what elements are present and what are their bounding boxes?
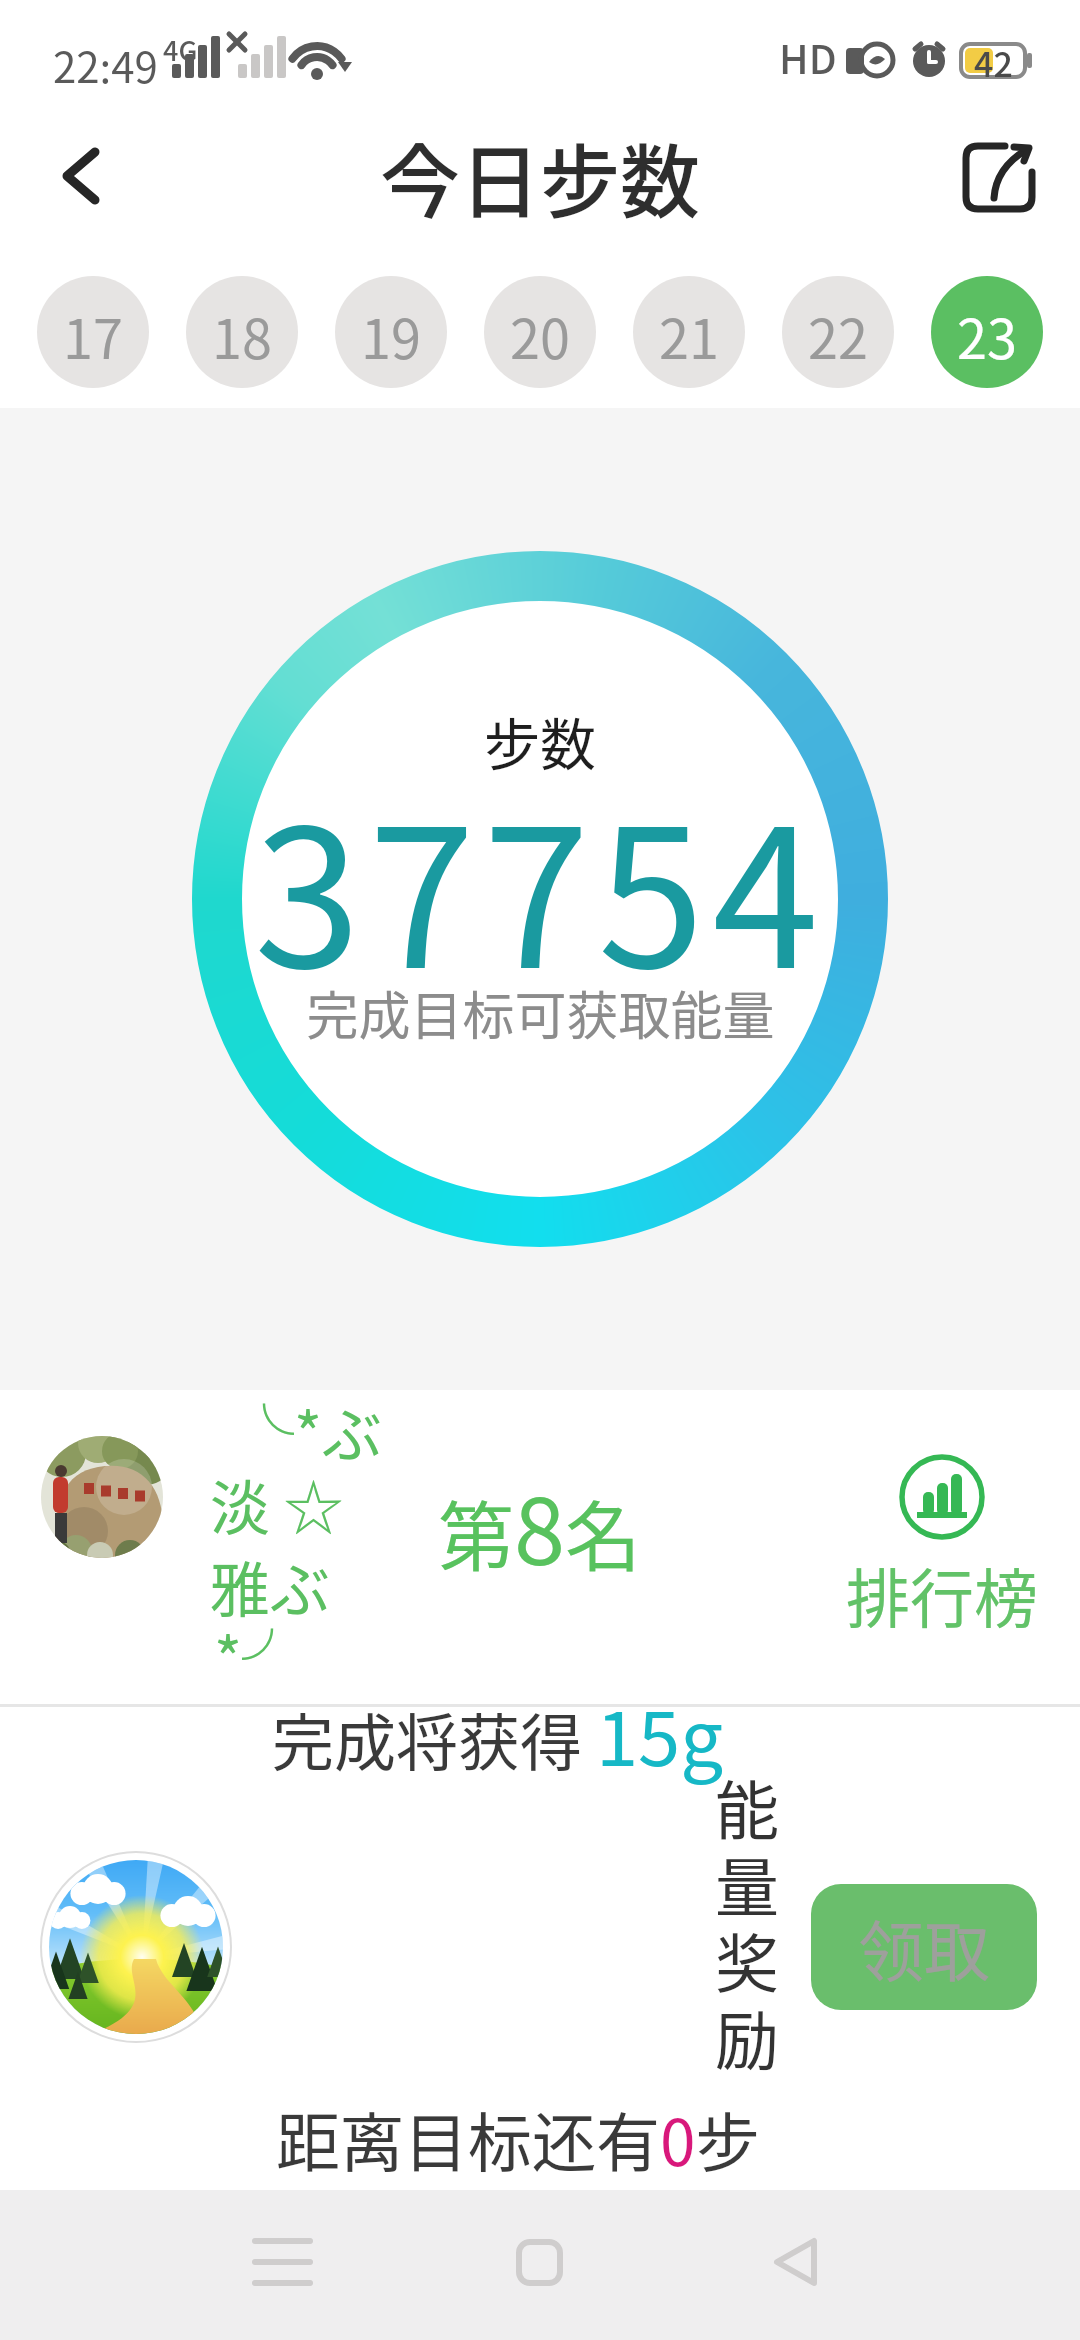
- staticText: 20: [510, 296, 570, 368]
- staticText: 18: [212, 296, 272, 368]
- staticText: HD: [779, 28, 837, 86]
- staticText: 距离目标还有0步: [276, 2092, 760, 2185]
- staticText: 能: [715, 1760, 779, 1853]
- staticText: 22: [808, 296, 868, 368]
- staticText: 42: [974, 38, 1013, 87]
- staticText: ╰*ぶ: [234, 1387, 383, 1474]
- staticText: 17: [63, 296, 123, 368]
- staticText: 23: [957, 296, 1017, 368]
- staticText: 37754: [254, 745, 827, 1023]
- staticText: 领取: [858, 1899, 990, 1995]
- staticText: 今日步数: [380, 118, 700, 234]
- staticText: 4G: [163, 30, 198, 69]
- staticText: 步数: [484, 700, 596, 781]
- staticText: *╯: [214, 1612, 303, 1699]
- staticText: 淡 ☆: [210, 1460, 344, 1547]
- staticText: 第8名: [438, 1458, 642, 1591]
- staticText: 完成将获得 15g: [272, 1678, 724, 1788]
- staticText: 完成目标可获取能量: [306, 975, 775, 1050]
- staticText: 19: [361, 296, 421, 368]
- staticText: 量: [715, 1837, 779, 1930]
- staticText: 排行榜: [846, 1548, 1038, 1641]
- staticText: 22:49: [53, 34, 158, 95]
- staticText: 21: [659, 296, 719, 368]
- staticText: 雅ぶ: [210, 1542, 330, 1629]
- staticText: 奖: [715, 1913, 779, 2006]
- staticText: 励: [715, 1990, 779, 2083]
